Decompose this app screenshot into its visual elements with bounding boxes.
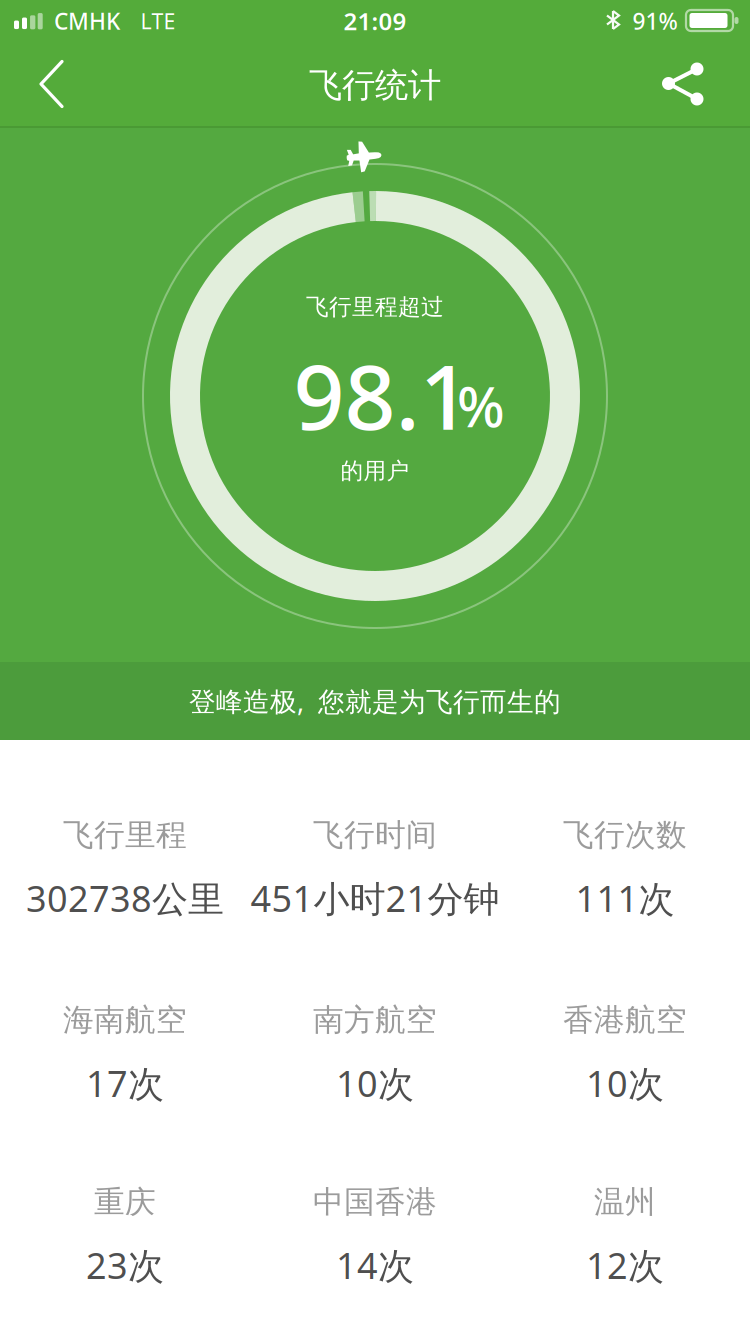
staticText: 14次 — [336, 1241, 414, 1289]
staticText: 111次 — [575, 874, 674, 922]
staticText: 温州 — [594, 1183, 656, 1221]
staticText: 飞行里程超过 — [306, 293, 444, 321]
staticText: 的用户 — [340, 457, 409, 485]
button[interactable] — [18, 49, 82, 117]
staticText: 香港航空 — [563, 1001, 687, 1039]
staticText: 中国香港 — [313, 1183, 437, 1221]
staticText: 10次 — [336, 1059, 414, 1107]
staticText: LTE — [140, 7, 175, 35]
staticText: 飞行时间 — [313, 816, 437, 854]
staticText: 21:09 — [343, 5, 406, 37]
staticText: 飞行统计 — [309, 65, 441, 106]
staticText: 12次 — [586, 1241, 664, 1289]
staticText: % — [457, 368, 505, 443]
staticText: 飞行次数 — [563, 816, 687, 854]
staticText: 98.1 — [293, 336, 470, 454]
staticText: 17次 — [86, 1059, 164, 1107]
staticText: 南方航空 — [313, 1001, 437, 1039]
staticText: 23次 — [86, 1241, 164, 1289]
staticText: CMHK — [54, 6, 120, 36]
button[interactable] — [655, 56, 711, 112]
staticText: 10次 — [586, 1059, 664, 1107]
staticText: 302738公里 — [26, 874, 224, 922]
staticText: 91% — [632, 6, 677, 36]
staticText: 451小时21分钟 — [250, 874, 499, 922]
staticText: 登峰造极, 您就是为飞行而生的 — [189, 683, 561, 719]
staticText: 重庆 — [94, 1183, 156, 1221]
staticText: 海南航空 — [63, 1001, 187, 1039]
staticText: 飞行里程 — [63, 816, 187, 854]
